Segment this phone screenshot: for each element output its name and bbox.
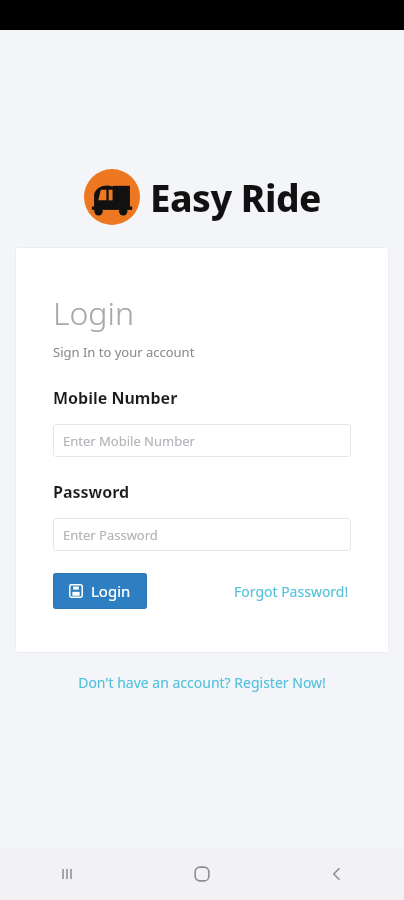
- button[interactable]: Recent apps: [0, 848, 134, 900]
- button[interactable]: Login: [53, 573, 147, 609]
- staticText: Login: [91, 581, 131, 601]
- staticText: Login: [53, 291, 134, 335]
- staticText: Forgot Password!: [234, 582, 349, 601]
- staticText: Password: [53, 481, 130, 503]
- staticText: Easy Ride: [150, 172, 321, 222]
- button[interactable]: Forgot Password!: [232, 576, 351, 607]
- button[interactable]: Back: [269, 848, 404, 900]
- staticText: Sign In to your account: [53, 343, 195, 361]
- button[interactable]: Enter Password: [53, 518, 351, 551]
- button[interactable]: Home: [134, 848, 269, 900]
- staticText: Don't have an account? Register Now!: [78, 673, 326, 692]
- staticText: Enter Mobile Number: [63, 432, 195, 450]
- button[interactable]: Enter Mobile Number: [53, 424, 351, 457]
- staticText: Mobile Number: [53, 387, 178, 409]
- button[interactable]: Don't have an account? Register Now!: [68, 667, 336, 698]
- staticText: Enter Password: [63, 526, 158, 544]
